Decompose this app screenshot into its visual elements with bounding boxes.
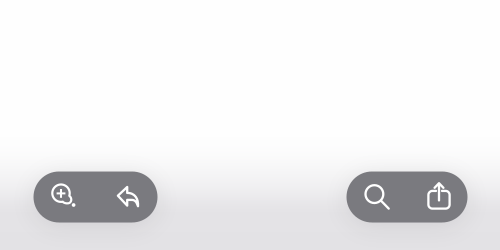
button[interactable]: Share [407, 171, 467, 222]
button[interactable]: Zoom In [33, 171, 95, 222]
button[interactable]: Search [346, 171, 407, 222]
button[interactable]: Undo [95, 171, 157, 222]
